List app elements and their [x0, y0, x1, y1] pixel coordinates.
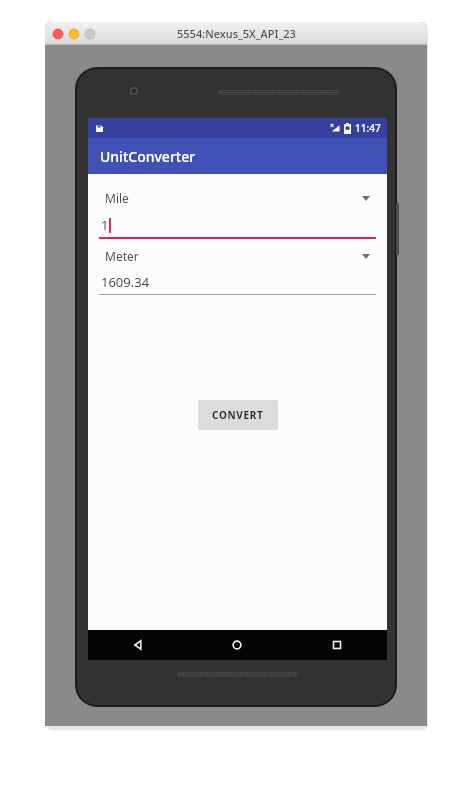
staticText: CONVERT [212, 408, 264, 422]
staticText: 1 [101, 216, 109, 234]
button[interactable]: Home [187, 630, 287, 660]
button[interactable]: 1609.34 [99, 269, 376, 295]
button[interactable]: Meter [99, 243, 376, 269]
button[interactable]: Back [88, 630, 187, 660]
button[interactable]: Mile [99, 185, 376, 211]
button[interactable]: Recent apps [287, 630, 387, 660]
button[interactable]: CONVERT [198, 400, 278, 430]
staticText: UnitConverter [100, 147, 196, 166]
staticText: Mile [105, 190, 129, 206]
button[interactable]: 1 [99, 211, 376, 239]
staticText: 5554:Nexus_5X_API_23 [177, 26, 296, 41]
staticText: 11:47 [355, 121, 381, 135]
staticText: Meter [105, 248, 139, 264]
staticText: 1609.34 [101, 273, 150, 291]
